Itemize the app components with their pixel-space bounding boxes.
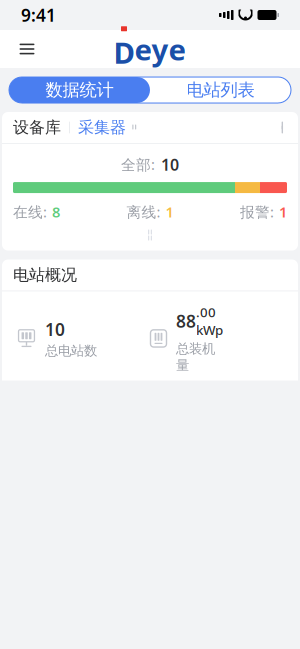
staticText: 全部: bbox=[121, 155, 159, 174]
button[interactable]: 设备库 bbox=[2, 112, 298, 143]
staticText: .00 kWp bbox=[196, 303, 223, 339]
staticText: 在线: bbox=[13, 202, 51, 221]
staticText: 总装机量 bbox=[176, 341, 215, 373]
staticText: 电站概况 bbox=[13, 265, 77, 285]
button[interactable]: Menu bbox=[10, 32, 44, 66]
staticText: eye bbox=[134, 29, 186, 68]
staticText: 电站列表 bbox=[186, 79, 254, 101]
staticText: 报警: bbox=[240, 202, 278, 221]
button[interactable]: 数据统计 bbox=[9, 77, 150, 103]
staticText: D bbox=[113, 33, 134, 72]
staticText: 10 bbox=[161, 154, 179, 175]
staticText: 数据统计 bbox=[45, 79, 113, 101]
staticText: 离线: bbox=[126, 202, 164, 221]
staticText: 9:41 bbox=[21, 3, 56, 26]
staticText: 采集器 bbox=[78, 118, 126, 137]
staticText: 10 bbox=[45, 318, 65, 341]
button[interactable]: 电站列表 bbox=[150, 77, 291, 103]
staticText: 1 bbox=[165, 202, 173, 221]
button[interactable]: Expand bbox=[130, 224, 170, 246]
staticText: 设备库 bbox=[13, 118, 61, 137]
staticText: 88 bbox=[176, 309, 196, 332]
staticText: 1 bbox=[279, 202, 287, 221]
staticText: 总电站数 bbox=[45, 343, 97, 359]
staticText: 8 bbox=[52, 202, 60, 221]
